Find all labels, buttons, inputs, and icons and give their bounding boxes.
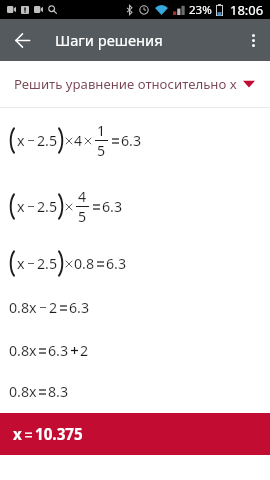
staticText: 23% <box>189 2 212 18</box>
staticText: x <box>17 131 25 150</box>
staticText: 8.3 <box>48 382 69 401</box>
staticText: Шаги решения <box>55 30 163 50</box>
staticText: 6.3 <box>69 298 90 317</box>
staticText: 10.375 <box>35 424 83 445</box>
staticText: 2 <box>49 298 58 317</box>
staticText: 18:06 <box>230 1 264 19</box>
staticText: 1 <box>97 121 106 140</box>
button[interactable]: Back <box>0 19 42 61</box>
staticText: Решить уравнение относительно x <box>14 75 237 93</box>
button[interactable]: x <box>0 413 270 455</box>
staticText: 4 <box>74 131 83 150</box>
staticText: 2 <box>80 341 89 360</box>
staticText: 6.3 <box>102 197 123 216</box>
staticText: 6.3 <box>106 254 127 273</box>
staticText: 6.3 <box>121 131 142 150</box>
staticText: x <box>17 197 25 216</box>
staticText: 4 <box>78 187 87 206</box>
staticText: 0.8x <box>9 341 37 360</box>
staticText: 5 <box>78 207 87 226</box>
staticText: x <box>13 424 22 445</box>
staticText: 2.5 <box>37 254 58 273</box>
staticText: 2.5 <box>37 197 58 216</box>
staticText: 6.3 <box>48 341 69 360</box>
staticText: 0.8x <box>9 382 37 401</box>
button[interactable]: Решить уравнение относительно x <box>0 61 270 107</box>
staticText: 0.8x <box>9 298 37 317</box>
staticText: 2.5 <box>37 131 58 150</box>
button[interactable]: More options <box>236 19 270 61</box>
staticText: 5 <box>97 141 106 160</box>
staticText: 0.8 <box>74 254 95 273</box>
staticText: x <box>17 254 25 273</box>
